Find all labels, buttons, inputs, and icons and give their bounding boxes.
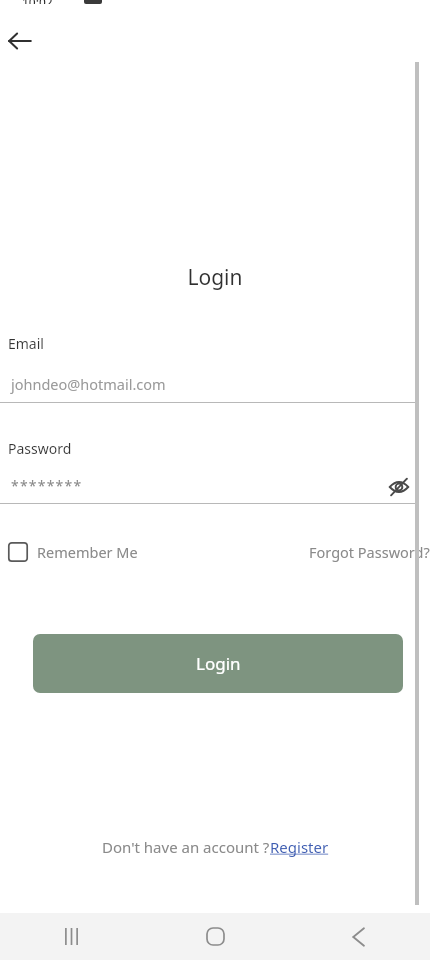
button[interactable]: Forgot Password? [309, 538, 430, 566]
button[interactable]: johndeo@hotmail.com [0, 366, 430, 402]
staticText: Register [270, 837, 329, 857]
staticText: Login [196, 652, 241, 675]
staticText: johndeo@hotmail.com [11, 374, 166, 394]
button[interactable]: Login [33, 634, 403, 693]
staticText: 10:02 [22, 0, 53, 4]
button[interactable]: Remember Me [0, 538, 144, 566]
button[interactable]: Register [270, 837, 329, 857]
button[interactable]: Back [287, 913, 430, 960]
staticText: ******** [11, 476, 83, 495]
staticText: Email [8, 334, 44, 353]
staticText: Don't have an account ? [102, 837, 270, 857]
staticText: Password [8, 439, 72, 458]
button[interactable]: Show password [384, 472, 414, 502]
button[interactable]: Home [144, 913, 287, 960]
button[interactable]: ******** [0, 470, 430, 503]
staticText: Remember Me [37, 542, 138, 562]
staticText: Forgot Password? [309, 542, 430, 562]
button[interactable]: Recent apps [0, 913, 144, 960]
staticText: Login [187, 263, 243, 292]
button[interactable]: Back [2, 24, 38, 58]
